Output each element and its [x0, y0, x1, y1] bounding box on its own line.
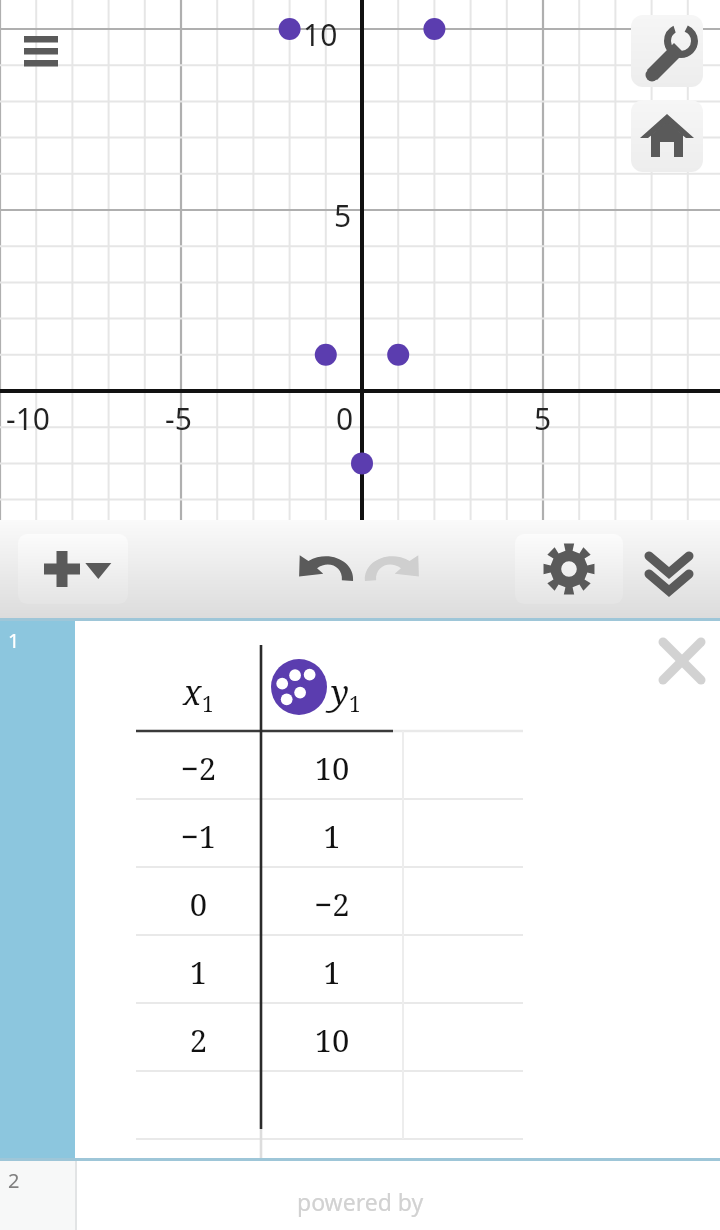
staticText: 5	[534, 398, 552, 439]
button[interactable]: Settings	[515, 534, 623, 604]
button[interactable]: 0	[136, 883, 261, 935]
button[interactable]: 10	[261, 747, 403, 799]
staticText: −2	[136, 747, 261, 789]
button[interactable]: 1	[261, 951, 403, 1003]
button[interactable]: Home	[631, 100, 703, 172]
button[interactable]: 10	[261, 1019, 403, 1071]
staticText: powered by	[297, 1186, 424, 1217]
staticText: -5	[165, 398, 192, 439]
staticText: 0	[336, 398, 354, 439]
button[interactable]: 1	[136, 951, 261, 1003]
button[interactable]: −1	[136, 815, 261, 867]
button[interactable]: Redo	[360, 548, 422, 594]
button[interactable]: −2	[136, 747, 261, 799]
staticText: 1	[261, 951, 403, 993]
staticText: 10	[303, 14, 338, 55]
staticText: 2	[8, 1167, 20, 1194]
button[interactable]: 2	[0, 1161, 720, 1230]
button[interactable]: Menu	[8, 14, 74, 80]
staticText: x	[183, 669, 202, 715]
staticText: −1	[136, 815, 261, 857]
staticText: −2	[261, 883, 403, 925]
button[interactable]: Collapse	[640, 542, 698, 598]
staticText: 10	[261, 747, 403, 789]
button[interactable]: Undo	[296, 548, 358, 594]
staticText: -10	[6, 398, 50, 439]
staticText: 1	[202, 690, 214, 719]
staticText: 2	[136, 1019, 261, 1061]
button[interactable]: Add item	[18, 534, 128, 604]
staticText: 1	[349, 690, 361, 719]
staticText: 0	[136, 883, 261, 925]
staticText: 10	[261, 1019, 403, 1061]
button[interactable]	[271, 659, 327, 715]
staticText: 1	[136, 951, 261, 993]
button[interactable]: 1	[261, 815, 403, 867]
staticText: 1	[261, 815, 403, 857]
staticText: 5	[334, 195, 352, 236]
button[interactable]: 2	[136, 1019, 261, 1071]
button[interactable]: Tools	[631, 15, 703, 87]
staticText: 1	[8, 627, 20, 654]
staticText: y	[331, 669, 349, 715]
button[interactable]: Delete	[652, 631, 712, 691]
button[interactable]: 1	[0, 621, 720, 1158]
button[interactable]: −2	[261, 883, 403, 935]
